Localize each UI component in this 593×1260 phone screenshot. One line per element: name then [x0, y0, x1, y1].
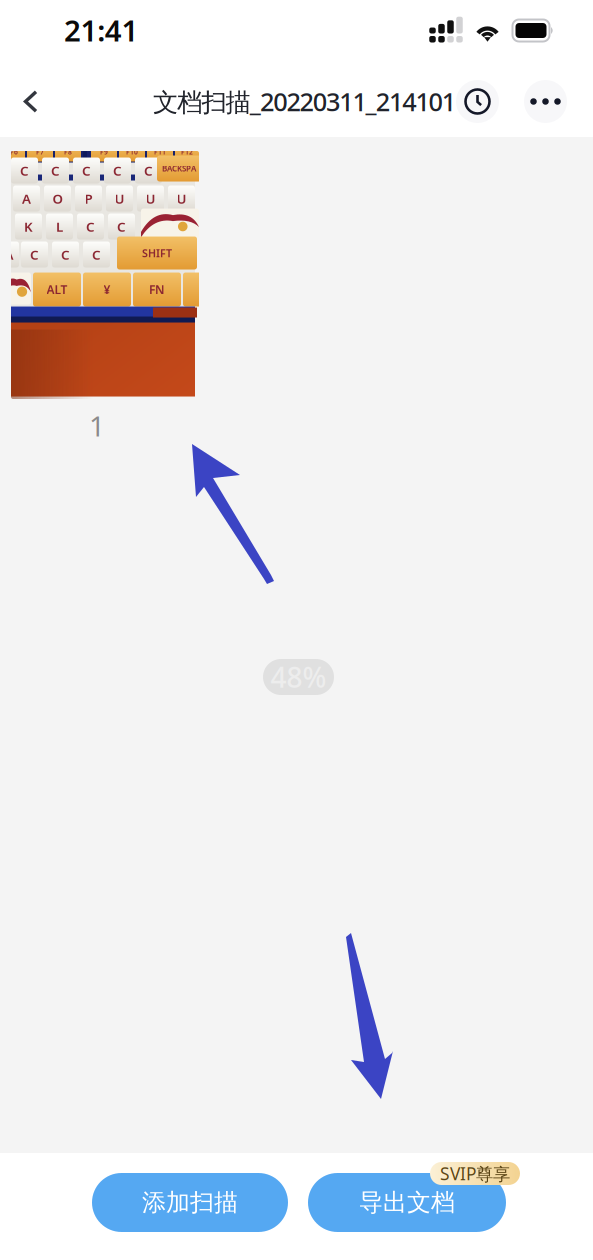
staticText: BACKSPA: [162, 163, 196, 174]
staticText: U: [114, 190, 124, 207]
staticText: F7: [36, 148, 44, 156]
staticText: L: [56, 218, 63, 235]
staticText: C: [92, 246, 101, 263]
staticText: C: [20, 162, 29, 179]
staticText: O: [52, 190, 62, 207]
staticText: U: [176, 190, 186, 207]
button[interactable]: Scanned page 1: [11, 151, 199, 399]
staticText: U: [145, 190, 155, 207]
staticText: ALT: [46, 281, 67, 297]
staticText: 21:41: [64, 10, 138, 49]
button[interactable]: 导出文档: [308, 1173, 506, 1232]
staticText: 1: [89, 407, 105, 444]
staticText: K: [24, 218, 33, 235]
staticText: F12: [181, 148, 193, 156]
staticText: P: [84, 190, 92, 207]
staticText: F9: [100, 148, 108, 156]
staticText: C: [30, 246, 39, 263]
staticText: C: [51, 162, 60, 179]
staticText: C: [61, 246, 70, 263]
staticText: ¥: [103, 281, 110, 297]
staticText: F6: [10, 148, 18, 156]
staticText: F10: [126, 148, 138, 156]
staticText: SHIFT: [142, 246, 172, 260]
staticText: FN: [149, 281, 165, 297]
staticText: C: [113, 162, 122, 179]
button[interactable]: More options: [524, 80, 567, 123]
button[interactable]: History: [456, 80, 499, 123]
staticText: 添加扫描: [142, 1188, 238, 1217]
staticText: F11: [154, 148, 166, 156]
staticText: C: [117, 218, 126, 235]
staticText: C: [144, 162, 153, 179]
staticText: SVIP尊享: [440, 1162, 510, 1185]
staticText: 48%: [270, 658, 326, 696]
button[interactable]: 添加扫描: [92, 1173, 288, 1232]
staticText: C: [86, 218, 95, 235]
button[interactable]: Back: [3, 73, 59, 129]
staticText: C: [82, 162, 91, 179]
staticText: 导出文档: [359, 1188, 455, 1217]
staticText: A: [22, 190, 31, 207]
staticText: A: [4, 246, 13, 263]
staticText: 文档扫描_20220311_214101: [153, 85, 456, 118]
staticText: F8: [64, 148, 72, 156]
